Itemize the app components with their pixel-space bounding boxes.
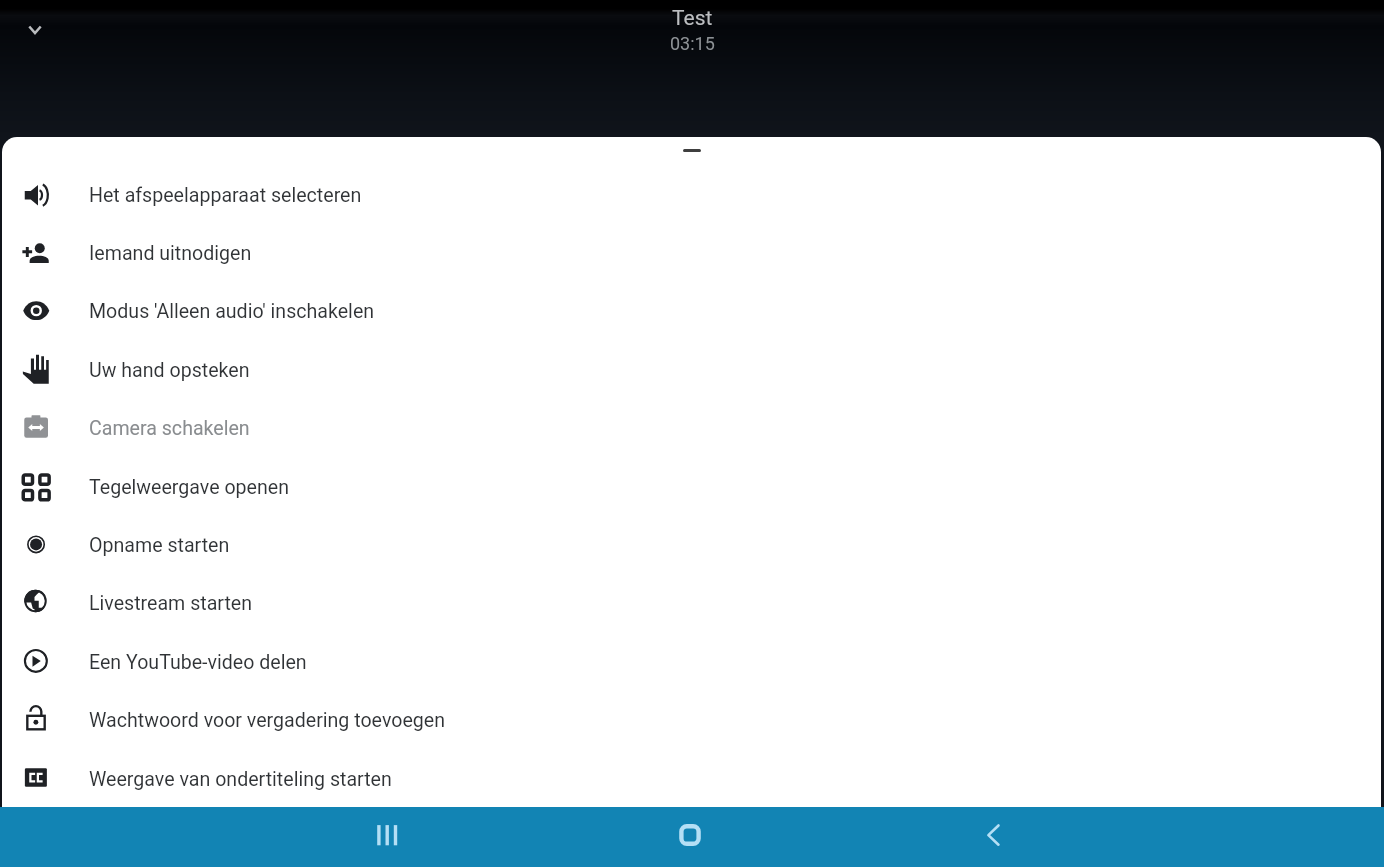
staticText: Uw hand opsteken <box>89 359 250 382</box>
staticText: Tegelweergave openen <box>89 476 289 499</box>
button[interactable]: Wachtwoord voor vergadering toevoegen <box>2 691 1381 749</box>
button[interactable]: Recent apps <box>338 807 434 867</box>
staticText: Het afspeelapparaat selecteren <box>89 184 362 207</box>
button[interactable]: Livestream starten <box>2 574 1381 632</box>
staticText: Iemand uitnodigen <box>89 242 252 265</box>
button[interactable]: Tegelweergave openen <box>2 458 1381 516</box>
button[interactable]: Camera schakelen <box>2 399 1381 457</box>
button[interactable]: Modus 'Alleen audio' inschakelen <box>2 282 1381 340</box>
staticText: Een YouTube-video delen <box>89 651 307 674</box>
staticText: Livestream starten <box>89 592 253 615</box>
staticText: 03:15 <box>670 33 715 54</box>
staticText: Camera schakelen <box>89 417 250 440</box>
button[interactable]: Back <box>945 807 1041 867</box>
button[interactable]: Iemand uitnodigen <box>2 224 1381 282</box>
staticText: Weergave van ondertiteling starten <box>89 768 392 791</box>
button[interactable]: Home <box>642 807 738 867</box>
button[interactable]: Uw hand opsteken <box>2 341 1381 399</box>
staticText: Test <box>672 6 713 31</box>
staticText: Modus 'Alleen audio' inschakelen <box>89 300 375 323</box>
staticText: Wachtwoord voor vergadering toevoegen <box>89 709 446 732</box>
button[interactable]: Collapse <box>16 10 54 48</box>
button[interactable]: Weergave van ondertiteling starten <box>2 750 1381 807</box>
staticText: Opname starten <box>89 534 230 557</box>
button[interactable]: Het afspeelapparaat selecteren <box>2 166 1381 224</box>
button[interactable]: Een YouTube-video delen <box>2 633 1381 691</box>
button[interactable]: Opname starten <box>2 516 1381 574</box>
